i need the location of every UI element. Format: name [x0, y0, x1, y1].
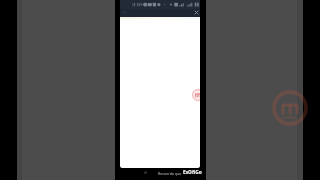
staticText: EsOfiGo: [183, 169, 202, 176]
button[interactable]: Menu: [122, 10, 127, 15]
staticText: Recuerda que: [158, 171, 183, 176]
button[interactable]: Close: [194, 10, 199, 15]
